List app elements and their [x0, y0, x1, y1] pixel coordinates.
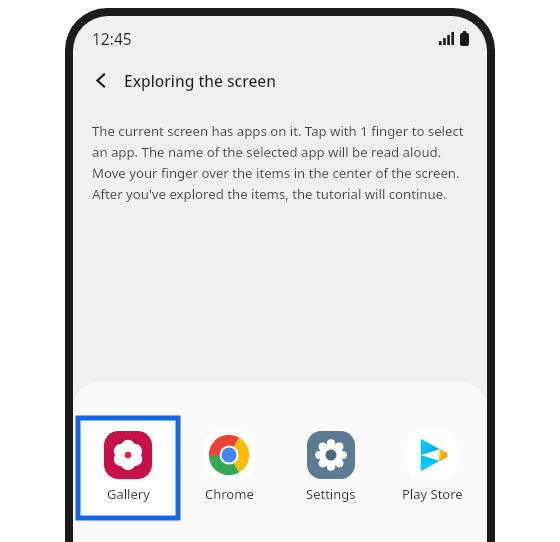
button[interactable]: Back [84, 63, 118, 97]
staticText: Exploring the screen [124, 70, 276, 91]
staticText: 12:45 [92, 28, 132, 49]
button[interactable]: Chrome [179, 418, 279, 518]
staticText: Play Store [402, 485, 463, 503]
button[interactable]: Settings [281, 418, 381, 518]
staticText: Settings [306, 485, 356, 503]
button[interactable]: Gallery [78, 418, 178, 518]
staticText: Gallery [107, 485, 150, 503]
staticText: Chrome [205, 485, 254, 503]
button[interactable]: Play Store [382, 418, 482, 518]
staticText: The current screen has apps on it. Tap w… [92, 122, 471, 203]
